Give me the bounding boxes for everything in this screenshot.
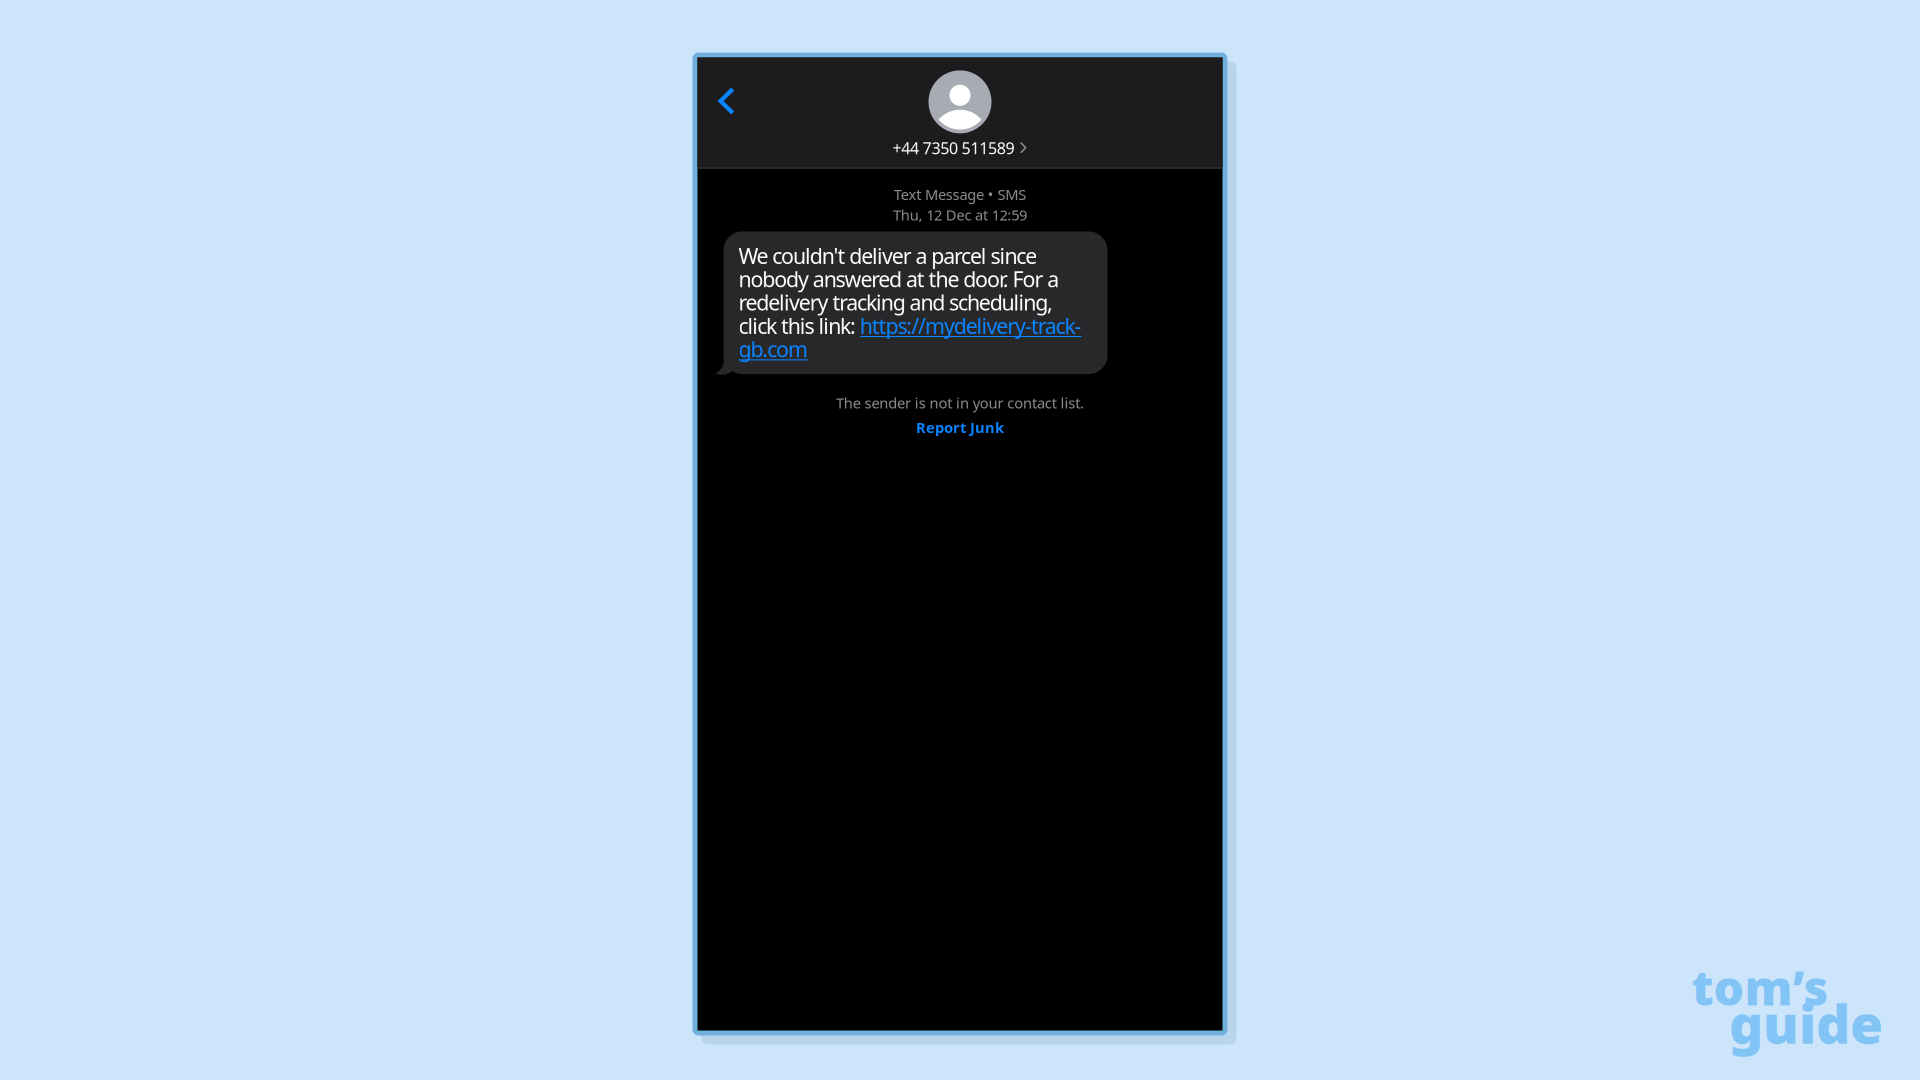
staticText: +44 7350 511589 (892, 137, 1015, 159)
staticText: Thu, 12 Dec at 12:59 (893, 205, 1027, 224)
staticText: guide (1729, 988, 1883, 1058)
staticText: We couldn't deliver a parcel since nobod… (738, 241, 1081, 363)
staticText: Report Junk (916, 418, 1004, 437)
button[interactable]: Back (697, 57, 751, 169)
button[interactable]: Report Junk (916, 418, 1004, 437)
staticText: Text Message • SMS (894, 184, 1026, 204)
button[interactable]: +44 7350 511589, contact info (697, 57, 1222, 169)
staticText: tom’s (1691, 955, 1828, 1019)
staticText: The sender is not in your contact list. (836, 393, 1084, 413)
